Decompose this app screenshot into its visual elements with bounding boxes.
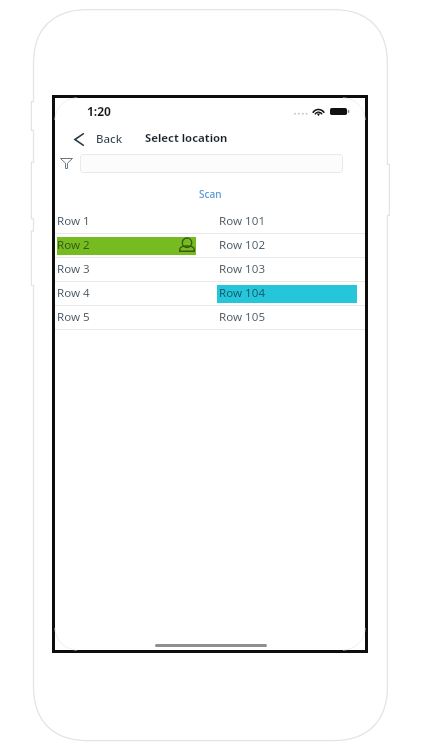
- staticText: 1:20: [87, 103, 111, 119]
- button[interactable]: [80, 154, 343, 173]
- staticText: Back: [96, 131, 123, 147]
- button[interactable]: Filter: [56, 154, 77, 173]
- staticText: Row 5: [57, 309, 90, 325]
- staticText: Row 2: [57, 237, 90, 253]
- button[interactable]: Row 1: [55, 210, 196, 234]
- button[interactable]: Back: [68, 129, 131, 149]
- button[interactable]: Row 2: [55, 234, 196, 258]
- button[interactable]: Row 4: [55, 282, 196, 306]
- staticText: Row 102: [219, 237, 266, 253]
- staticText: Row 4: [57, 285, 90, 301]
- staticText: Row 3: [57, 261, 90, 277]
- button[interactable]: Row 105: [217, 306, 357, 330]
- button[interactable]: Row 5: [55, 306, 196, 330]
- button[interactable]: Row 101: [217, 210, 357, 234]
- staticText: Row 1: [57, 213, 90, 229]
- staticText: Row 105: [219, 309, 266, 325]
- staticText: Select location: [145, 130, 228, 145]
- staticText: Scan: [199, 187, 222, 201]
- button[interactable]: Scan: [190, 184, 231, 204]
- staticText: Row 104: [219, 285, 266, 301]
- button[interactable]: Row 102: [217, 234, 357, 258]
- staticText: Row 101: [219, 213, 266, 229]
- staticText: Row 103: [219, 261, 266, 277]
- button[interactable]: Row 103: [217, 258, 357, 282]
- other: Occupied by user: [179, 237, 195, 252]
- button[interactable]: Row 104: [217, 282, 357, 306]
- button[interactable]: Row 3: [55, 258, 196, 282]
